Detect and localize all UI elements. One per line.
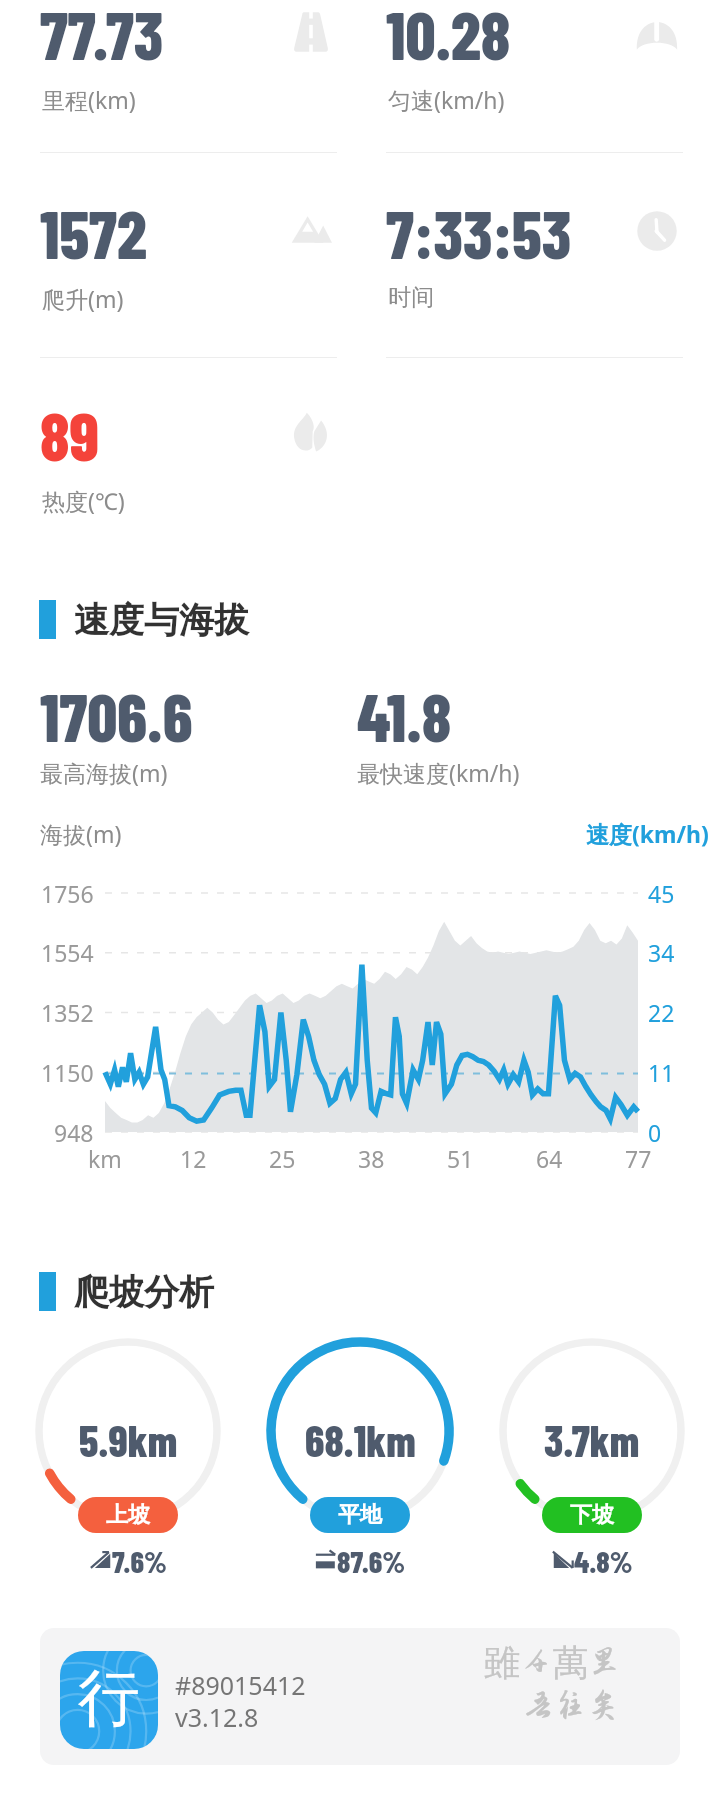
staticText: 4.8% (574, 1543, 633, 1577)
staticText: 1756 (41, 878, 94, 909)
staticText: 51 (447, 1143, 474, 1174)
staticText: 68.1km (305, 1414, 416, 1466)
button[interactable]: 1572 (40, 193, 337, 323)
staticText: 匀速(km/h) (388, 84, 505, 115)
staticText: 1572 (40, 193, 147, 272)
staticText: 0 (648, 1117, 662, 1148)
staticText: 3.7km (544, 1414, 640, 1466)
staticText: 1150 (41, 1057, 94, 1088)
staticText: 7.6% (112, 1543, 167, 1577)
staticText: 时间 (388, 283, 434, 312)
button[interactable]: 77.73 (40, 0, 337, 124)
staticText: 吾往矣 (522, 1687, 620, 1723)
staticText: 948 (54, 1117, 94, 1148)
staticText: 速度(km/h) (586, 818, 709, 849)
staticText: 5.9km (79, 1414, 178, 1466)
staticText: 速度与海拔 (74, 598, 249, 642)
staticText: 上坡 (106, 1501, 150, 1529)
staticText: 11 (648, 1057, 675, 1088)
staticText: 77 (625, 1143, 652, 1174)
staticText: 爬升(m) (42, 283, 124, 314)
button[interactable]: 7:33:53 (386, 193, 683, 323)
staticText: 行 (78, 1659, 140, 1737)
staticText: 77.73 (40, 0, 164, 73)
button[interactable]: 行 (40, 1628, 680, 1765)
staticText: 1554 (41, 937, 94, 968)
staticText: 22 (648, 997, 675, 1028)
staticText: 最快速度(km/h) (357, 757, 520, 788)
staticText: 爬坡分析 (74, 1270, 214, 1314)
staticText: 64 (536, 1143, 563, 1174)
staticText: 12 (180, 1143, 207, 1174)
button[interactable]: 上坡 (78, 1497, 178, 1533)
staticText: 41.8 (357, 676, 452, 755)
staticText: 海拔(m) (40, 818, 122, 849)
staticText: 里程(km) (42, 84, 136, 115)
button[interactable]: 10.28 (386, 0, 683, 124)
staticText: 下坡 (570, 1501, 614, 1529)
staticText: 10.28 (386, 0, 511, 73)
staticText: 89 (40, 395, 99, 474)
staticText: 7:33:53 (386, 193, 572, 272)
staticText: 34 (648, 937, 675, 968)
staticText: 热度(℃) (42, 485, 125, 516)
button[interactable]: 平地 (310, 1497, 410, 1533)
staticText: 平地 (338, 1501, 382, 1529)
staticText: km (88, 1143, 122, 1174)
button[interactable]: 89 (40, 395, 337, 525)
staticText: 87.6% (337, 1543, 406, 1577)
staticText: 最高海拔(m) (40, 757, 168, 788)
staticText: 38 (358, 1143, 385, 1174)
staticText: 1352 (41, 997, 94, 1028)
staticText: #89015412 (175, 1668, 306, 1702)
staticText: v3.12.8 (175, 1700, 259, 1734)
button[interactable]: 下坡 (542, 1497, 642, 1533)
staticText: 雖千萬里 (484, 1640, 621, 1685)
staticText: 25 (269, 1143, 296, 1174)
staticText: 45 (648, 878, 675, 909)
staticText: 1706.6 (40, 676, 193, 755)
